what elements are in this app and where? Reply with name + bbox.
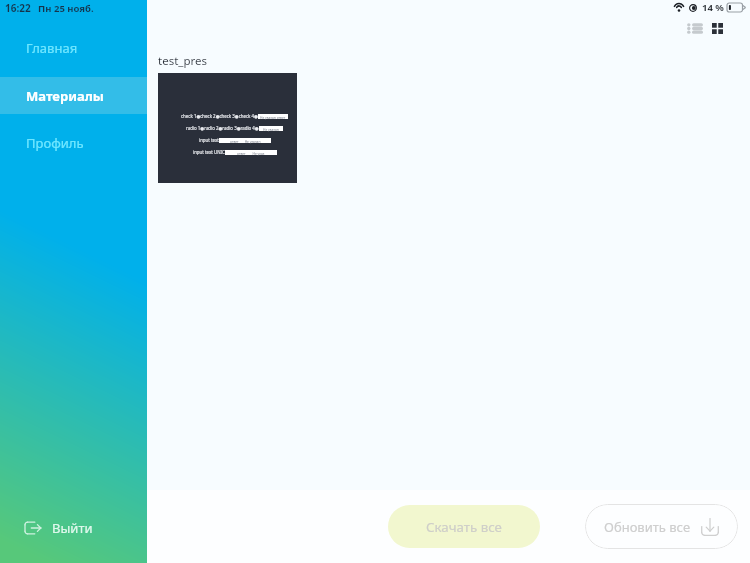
staticText: radio 1●radio 2●radio 3●radio 4●: [186, 125, 259, 131]
staticText: Профиль: [26, 134, 84, 152]
staticText: 16:22: [5, 1, 31, 15]
staticText: input text UNIC: [193, 149, 225, 155]
button[interactable]: Выйти: [0, 512, 147, 544]
button[interactable]: Скачать все: [388, 505, 540, 548]
staticText: 14 %: [702, 1, 724, 14]
staticText: Скачать все: [426, 518, 502, 536]
staticText: test_pres: [158, 53, 207, 69]
button[interactable]: check 1●check 2●check 3●check 4●: [158, 73, 297, 183]
staticText: check 1●check 2●check 3●check 4●: [181, 113, 258, 119]
staticText: Не указан ответ: [260, 115, 286, 119]
button[interactable]: Материалы: [0, 77, 147, 114]
staticText: ответ Не указан: [230, 139, 261, 143]
button[interactable]: List view: [684, 18, 706, 39]
staticText: Пн 25 нояб.: [38, 2, 94, 15]
button[interactable]: Обновить все: [585, 504, 738, 549]
staticText: Обновить все: [604, 518, 691, 536]
staticText: Материалы: [26, 87, 104, 105]
button[interactable]: Grid view: [706, 18, 728, 39]
button[interactable]: Главная: [0, 29, 147, 66]
staticText: Не указан: [263, 127, 279, 131]
staticText: input text: [199, 137, 219, 143]
button[interactable]: Профиль: [0, 124, 147, 161]
staticText: Выйти: [52, 519, 93, 537]
staticText: Главная: [26, 39, 78, 57]
staticText: ответ Не указ: [237, 151, 265, 155]
